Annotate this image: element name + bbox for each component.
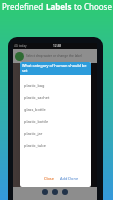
- staticText: Add Done: [60, 176, 79, 181]
- button[interactable]: Add Done: [57, 176, 82, 181]
- button[interactable]: plastic_jar: [20, 127, 91, 139]
- staticText: plastic_bottle: [24, 119, 49, 124]
- button[interactable]: plastic_sachet: [20, 91, 91, 103]
- staticText: plastic_bag: [24, 83, 45, 88]
- staticText: plastic_tube: [24, 143, 46, 148]
- staticText: 12:38: [53, 44, 62, 48]
- button[interactable]: plastic_tube: [20, 139, 91, 151]
- staticText: plastic_sachet: [24, 95, 50, 100]
- staticText: What category of human should be set: [22, 63, 91, 73]
- button[interactable]: glass_bottle: [20, 103, 91, 115]
- staticText: plastic_jar: [24, 131, 43, 136]
- staticText: Labels: [46, 1, 72, 12]
- button[interactable]: Navigation: [62, 189, 68, 195]
- button[interactable]: Close: [41, 176, 57, 181]
- staticText: Select drop water or change the label: [26, 54, 82, 58]
- button[interactable]: Navigation: [52, 189, 58, 195]
- staticText: 4G today: [14, 44, 27, 48]
- button[interactable]: plastic_bottle: [20, 115, 91, 127]
- button[interactable]: Avatar: [15, 52, 24, 61]
- staticText: to Choose: [72, 1, 112, 12]
- staticText: glass_bottle: [24, 107, 46, 112]
- button[interactable]: plastic_bag: [20, 79, 91, 91]
- button[interactable]: Navigation: [42, 189, 48, 195]
- staticText: Close: [44, 176, 54, 181]
- staticText: Predefined: [2, 1, 46, 12]
